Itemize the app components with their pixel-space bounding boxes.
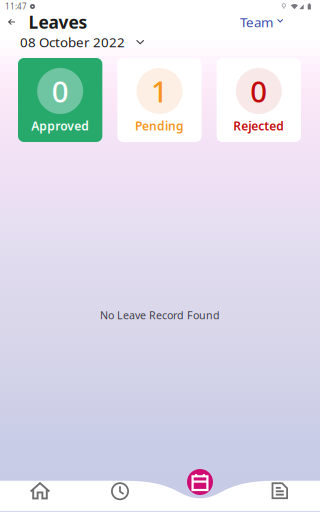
staticText: 1	[151, 71, 168, 110]
staticText: 11:47	[5, 1, 27, 12]
button[interactable]: Leave calendar	[187, 469, 213, 495]
staticText: 08 October 2022	[20, 33, 125, 51]
staticText: Team	[240, 13, 273, 31]
button[interactable]: Team	[234, 10, 289, 34]
button[interactable]: Home	[0, 482, 80, 512]
button[interactable]: Attendance	[80, 482, 160, 512]
staticText: Approved	[31, 118, 89, 134]
staticText: 0	[52, 71, 69, 110]
button[interactable]: 08 October 2022	[20, 31, 144, 53]
staticText: No Leave Record Found	[100, 308, 220, 322]
button[interactable]: Back	[0, 14, 20, 30]
staticText: Pending	[135, 118, 184, 134]
button[interactable]: Documents	[240, 482, 320, 512]
button[interactable]: 0	[18, 58, 102, 142]
staticText: Leaves	[28, 10, 87, 33]
staticText: Rejected	[233, 118, 284, 134]
button[interactable]: 1	[117, 58, 202, 142]
button[interactable]: 0	[217, 58, 301, 142]
staticText: 0	[250, 71, 267, 110]
